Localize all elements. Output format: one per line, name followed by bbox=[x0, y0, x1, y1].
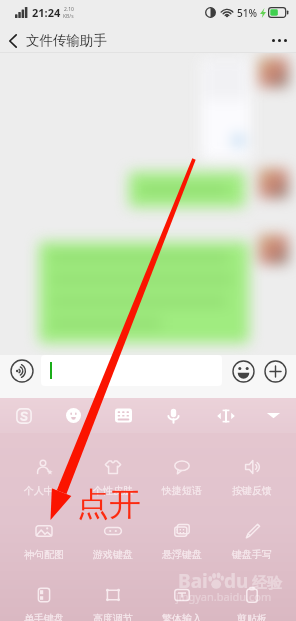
staticText: 个性皮肤 bbox=[93, 484, 133, 497]
staticText: 悬浮键盘 bbox=[162, 548, 202, 561]
button[interactable]: Back bbox=[0, 29, 26, 52]
staticText: jingyan.baidu.com bbox=[176, 589, 272, 604]
staticText: du bbox=[224, 568, 249, 594]
button[interactable]: Move cursor bbox=[207, 398, 245, 433]
button[interactable]: Keyboard bbox=[104, 398, 142, 433]
button[interactable]: 个性皮肤 bbox=[78, 449, 147, 497]
staticText: 剪贴板 bbox=[237, 612, 267, 621]
staticText: 经验 bbox=[252, 574, 282, 593]
button[interactable]: Voice input bbox=[154, 398, 192, 433]
button[interactable]: 游戏键盘 bbox=[78, 513, 147, 561]
button[interactable]: 单手键盘 bbox=[9, 577, 78, 621]
button[interactable]: More options bbox=[262, 29, 296, 52]
staticText: 快捷短语 bbox=[162, 484, 202, 497]
button[interactable]: 高度调节 bbox=[78, 577, 147, 621]
staticText: 神句配图 bbox=[24, 548, 64, 561]
staticText: 键盘手写 bbox=[232, 548, 272, 561]
button[interactable]: Collapse keyboard bbox=[254, 398, 292, 433]
staticText: 高度调节 bbox=[93, 612, 133, 621]
staticText: 繁体输入 bbox=[162, 612, 202, 621]
staticText: 按键反馈 bbox=[232, 484, 272, 497]
staticText: Bai bbox=[178, 568, 208, 594]
staticText: 51% bbox=[237, 6, 257, 20]
button[interactable]: Emoji bbox=[54, 398, 92, 433]
staticText: 点开 bbox=[77, 484, 141, 524]
button[interactable]: 剪贴板 bbox=[217, 577, 287, 621]
button[interactable]: Voice input bbox=[7, 356, 37, 386]
button[interactable]: 键盘手写 bbox=[217, 513, 287, 561]
button[interactable]: 繁体输入 bbox=[147, 577, 217, 621]
button[interactable]: 悬浮键盘 bbox=[147, 513, 217, 561]
staticText: 个人中心 bbox=[24, 484, 64, 497]
staticText: 2.10 bbox=[64, 6, 74, 13]
staticText: 文件传输助手 bbox=[26, 32, 107, 49]
button[interactable]: Sogou input method bbox=[8, 398, 40, 433]
button[interactable]: Emoji bbox=[228, 356, 258, 386]
button[interactable]: More functions bbox=[260, 356, 290, 386]
staticText: 游戏键盘 bbox=[93, 548, 133, 561]
staticText: 21:24 bbox=[32, 5, 61, 20]
button[interactable]: 神句配图 bbox=[9, 513, 78, 561]
staticText: KB/s bbox=[63, 13, 74, 20]
button[interactable] bbox=[41, 355, 222, 386]
button[interactable]: 快捷短语 bbox=[147, 449, 217, 497]
button[interactable]: 个人中心 bbox=[9, 449, 78, 497]
staticText: 单手键盘 bbox=[24, 612, 64, 621]
button[interactable]: 按键反馈 bbox=[217, 449, 287, 497]
